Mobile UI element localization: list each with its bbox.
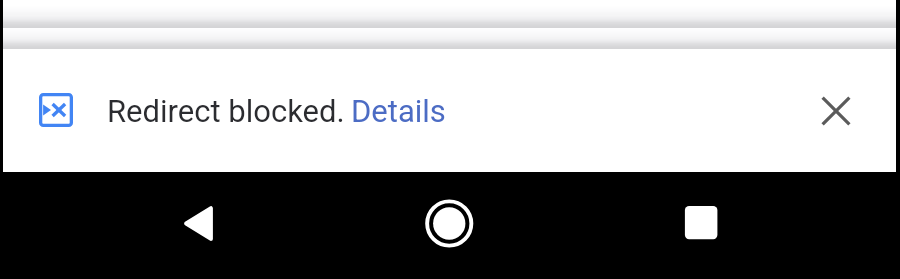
staticText: Details	[351, 93, 446, 129]
button[interactable]: Back	[148, 172, 248, 279]
button[interactable]: Home	[399, 172, 499, 279]
button[interactable]: Recent apps	[652, 172, 752, 279]
staticText: Redirect blocked.	[107, 93, 345, 129]
button[interactable]: Dismiss	[812, 87, 860, 135]
button[interactable]: Details	[351, 93, 446, 129]
